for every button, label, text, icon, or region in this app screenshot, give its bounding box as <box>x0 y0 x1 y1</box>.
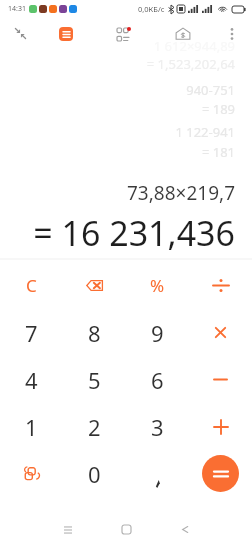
staticText: 0,0КБ/c <box>138 4 165 14</box>
staticText: 2 <box>88 412 101 442</box>
button[interactable]: 4 <box>0 356 63 403</box>
staticText: = 1,523,202,64 <box>146 55 235 73</box>
button[interactable]: Plus <box>189 403 252 450</box>
staticText: 6 <box>151 365 164 395</box>
button[interactable]: Recents <box>44 515 92 544</box>
staticText: 0 <box>88 459 101 489</box>
button[interactable]: 9 <box>126 309 189 356</box>
staticText: 5 <box>88 365 101 395</box>
staticText: 1 <box>25 412 38 442</box>
button[interactable]: 0 <box>63 450 126 497</box>
staticText: = 181 <box>201 143 235 161</box>
button[interactable]: More options <box>213 18 251 49</box>
staticText: 8 <box>88 318 101 348</box>
staticText: = 16 231,436 <box>33 210 235 256</box>
button[interactable]: 1 <box>0 403 63 450</box>
button[interactable]: Divide <box>189 262 252 309</box>
staticText: 14:31 <box>8 4 26 14</box>
staticText: 3 <box>151 412 164 442</box>
button[interactable]: Clear <box>0 262 63 309</box>
button[interactable]: Minus <box>189 356 252 403</box>
staticText: = 189 <box>201 100 235 118</box>
staticText: 7 <box>25 318 38 348</box>
button[interactable]: Expand <box>1 18 39 49</box>
button[interactable]: 6 <box>126 356 189 403</box>
button[interactable]: Calculator <box>47 18 85 49</box>
button[interactable]: Equals <box>202 455 239 492</box>
button[interactable]: 3 <box>126 403 189 450</box>
button[interactable]: 5 <box>63 356 126 403</box>
button[interactable]: Multiply <box>189 309 252 356</box>
button[interactable]: Unit converter <box>106 18 144 49</box>
button[interactable]: Back <box>161 515 209 544</box>
button[interactable]: Unit conversion <box>0 450 63 497</box>
button[interactable]: 7 <box>0 309 63 356</box>
staticText: 1 612×944,89 <box>153 37 235 55</box>
staticText: % <box>150 274 165 297</box>
staticText: 940-751 <box>186 81 235 99</box>
staticText: 4 <box>25 365 38 395</box>
button[interactable]: Percent <box>126 262 189 309</box>
button[interactable]: 2 <box>63 403 126 450</box>
staticText: 1 122-941 <box>175 123 235 141</box>
button[interactable]: Home <box>102 515 150 544</box>
button[interactable]: Mortgage calculator <box>164 18 202 49</box>
staticText: 73,88×219,7 <box>127 180 235 206</box>
staticText: 9 <box>151 318 164 348</box>
button[interactable]: Decimal separator <box>126 450 189 497</box>
button[interactable]: 8 <box>63 309 126 356</box>
button[interactable]: Backspace <box>63 262 126 309</box>
staticText: C <box>26 274 37 297</box>
